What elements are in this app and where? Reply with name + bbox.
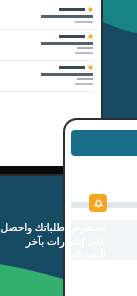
button[interactable] xyxy=(0,3,101,29)
button[interactable] xyxy=(0,61,101,91)
staticText: على إشعارات بآخر xyxy=(25,234,106,248)
staticText: استعرض طلباتك واحصل xyxy=(0,220,106,234)
staticText: التحديثات xyxy=(65,248,106,260)
button[interactable] xyxy=(0,30,101,60)
button[interactable]: Notifications xyxy=(89,194,107,212)
